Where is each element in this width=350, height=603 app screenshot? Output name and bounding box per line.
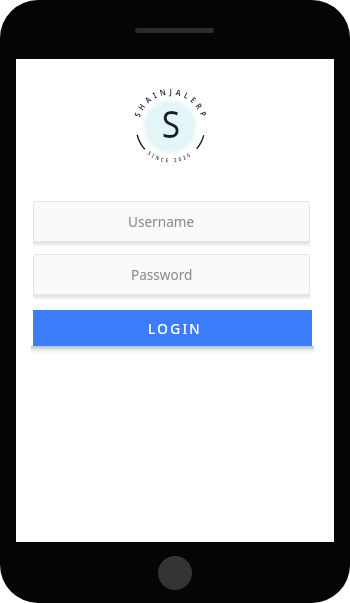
button[interactable]: Home bbox=[158, 556, 192, 590]
button[interactable]: Password bbox=[33, 254, 310, 295]
staticText: Password bbox=[131, 265, 193, 284]
button[interactable]: LOGIN bbox=[33, 310, 312, 346]
staticText: Username bbox=[128, 212, 195, 231]
button[interactable]: Username bbox=[33, 201, 310, 242]
staticText: LOGIN bbox=[148, 320, 203, 338]
